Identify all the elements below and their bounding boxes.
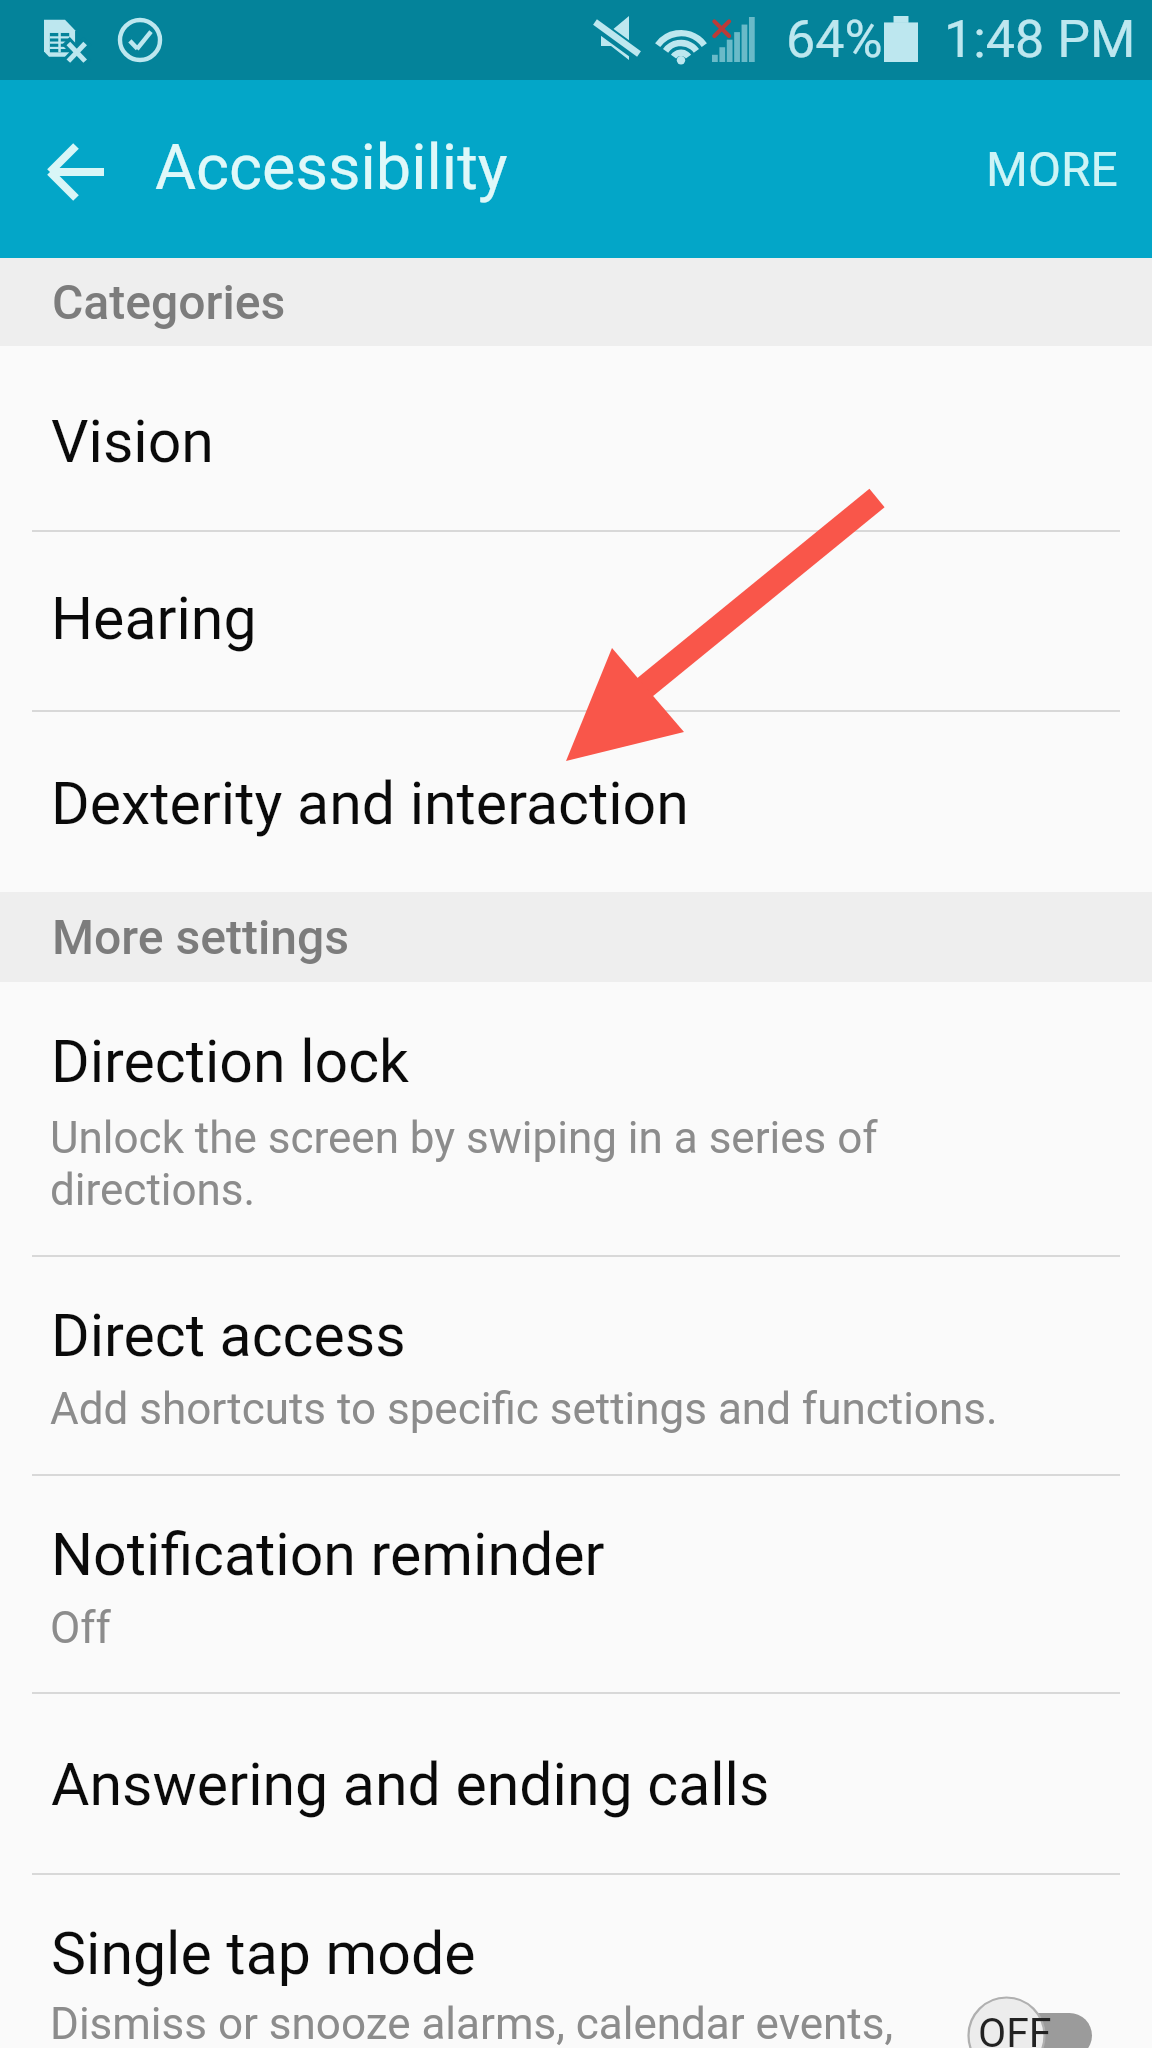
button[interactable]: Vision — [0, 346, 1152, 530]
staticText: 64% — [786, 9, 883, 70]
staticText: Dexterity and interaction — [51, 769, 689, 838]
staticText: OFF — [978, 2009, 1052, 2048]
button[interactable]: Single tap mode, off — [950, 1975, 1140, 2048]
staticText: Hearing — [51, 584, 257, 653]
staticText: Add shortcuts to specific settings and f… — [50, 1383, 1050, 1435]
button[interactable]: Direct access — [0, 1257, 1152, 1474]
staticText: MORE — [986, 141, 1118, 197]
button[interactable]: Dexterity and interaction — [0, 712, 1152, 892]
staticText: Single tap mode — [51, 1919, 476, 1988]
staticText: Dismiss or snooze alarms, calendar event… — [50, 1998, 1050, 2048]
button[interactable]: Navigate up — [22, 114, 132, 224]
staticText: More settings — [52, 909, 349, 965]
button[interactable]: Hearing — [0, 532, 1152, 710]
button[interactable]: More options — [952, 117, 1152, 221]
staticText: Unlock the screen by swiping in a series… — [50, 1112, 930, 1216]
staticText: Categories — [52, 274, 286, 330]
staticText: Accessibility — [155, 131, 508, 205]
staticText: Notification reminder — [51, 1520, 605, 1589]
staticText: Vision — [51, 407, 214, 476]
button[interactable]: Single tap mode — [0, 1875, 1152, 2048]
staticText: Answering and ending calls — [51, 1750, 770, 1819]
button[interactable]: Answering and ending calls — [0, 1694, 1152, 1873]
button[interactable]: Notification reminder — [0, 1476, 1152, 1692]
staticText: Off — [50, 1602, 950, 1654]
button[interactable]: Direction lock — [0, 982, 1152, 1255]
staticText: 1:48 PM — [944, 9, 1136, 70]
staticText: Direct access — [51, 1301, 406, 1370]
staticText: Direction lock — [51, 1027, 409, 1096]
